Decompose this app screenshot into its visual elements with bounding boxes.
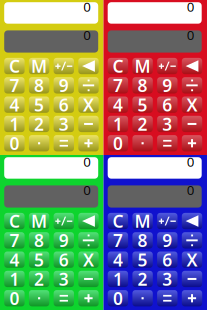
staticText: 6 [162,248,172,271]
button[interactable]: 2 [29,271,49,287]
button[interactable]: 5 [29,251,49,268]
staticText: X [83,93,94,116]
button[interactable]: 4 [4,96,25,113]
button[interactable]: 9 [54,77,74,93]
button[interactable]: 2 [132,271,153,287]
button[interactable]: 8 [29,77,49,93]
button[interactable]: Divide [78,232,99,248]
staticText: C [9,54,20,77]
button[interactable]: 3 [157,116,177,132]
button[interactable]: Minus [182,271,202,287]
button[interactable]: Plus minus [157,58,177,74]
button[interactable]: Backspace [182,58,202,74]
button[interactable]: 2 [132,116,153,132]
button[interactable]: 8 [132,232,153,248]
button[interactable]: 4 [4,251,25,268]
button[interactable]: 1 [4,271,25,287]
button[interactable]: 0 [4,135,25,151]
button[interactable]: Plus [78,135,99,151]
button[interactable]: 3 [157,271,177,287]
staticText: X [186,93,197,116]
staticText: 0 [9,287,19,310]
staticText: 8 [138,229,148,252]
button[interactable]: 3 [54,271,74,287]
button[interactable]: M [132,213,153,229]
button[interactable]: Backspace [182,213,202,229]
button[interactable]: 5 [29,96,49,113]
staticText: C [112,209,123,232]
button[interactable]: Plus minus [54,58,74,74]
button[interactable]: 0 [108,135,128,151]
staticText: 9 [59,229,69,252]
button[interactable]: 6 [54,251,74,268]
staticText: 0 [187,153,195,170]
staticText: 2 [138,112,148,135]
button[interactable]: C [4,213,25,229]
button[interactable]: M [132,58,153,74]
button[interactable]: Plus minus [54,213,74,229]
button[interactable]: 0 [4,290,25,306]
button[interactable]: 7 [4,77,25,93]
button[interactable]: X [182,251,202,268]
button[interactable]: Backspace [78,58,99,74]
button[interactable]: 9 [54,232,74,248]
button[interactable]: Equals [157,290,177,306]
button[interactable]: X [78,251,99,268]
button[interactable]: 6 [157,251,177,268]
button[interactable]: Divide [182,232,202,248]
button[interactable]: 0 [108,290,128,306]
button[interactable]: C [108,58,128,74]
button[interactable]: Divide [182,77,202,93]
button[interactable]: Divide [78,77,99,93]
button[interactable]: X [182,96,202,113]
button[interactable]: Plus [78,290,99,306]
button[interactable]: Minus [78,271,99,287]
button[interactable]: 6 [157,96,177,113]
button[interactable]: Plus [182,135,202,151]
button[interactable]: 9 [157,77,177,93]
staticText: 0 [9,132,19,155]
button[interactable]: 2 [29,116,49,132]
staticText: 2 [138,267,148,290]
button[interactable]: M [29,213,49,229]
staticText: 4 [9,93,19,116]
button[interactable]: 7 [108,232,128,248]
button[interactable]: Decimal point [29,135,49,151]
button[interactable]: 8 [132,77,153,93]
button[interactable]: 5 [132,96,153,113]
staticText: 9 [162,229,172,252]
button[interactable]: 4 [108,251,128,268]
button[interactable]: Equals [54,290,74,306]
button[interactable]: Plus minus [157,213,177,229]
button[interactable]: 9 [157,232,177,248]
staticText: 0 [113,287,123,310]
button[interactable]: 3 [54,116,74,132]
staticText: 1 [9,267,19,290]
button[interactable]: 6 [54,96,74,113]
button[interactable]: 5 [132,251,153,268]
button[interactable]: 8 [29,232,49,248]
staticText: 0 [83,181,91,199]
button[interactable]: 1 [4,116,25,132]
button[interactable]: Minus [182,116,202,132]
staticText: 2 [34,267,44,290]
staticText: 4 [113,93,123,116]
button[interactable]: Decimal point [132,135,153,151]
button[interactable]: Equals [54,135,74,151]
button[interactable]: 7 [4,232,25,248]
button[interactable]: Decimal point [29,290,49,306]
button[interactable]: Equals [157,135,177,151]
button[interactable]: Minus [78,116,99,132]
button[interactable]: C [108,213,128,229]
button[interactable]: Backspace [78,213,99,229]
button[interactable]: Decimal point [132,290,153,306]
button[interactable]: 4 [108,96,128,113]
button[interactable]: Plus [182,290,202,306]
button[interactable]: 1 [108,271,128,287]
button[interactable]: M [29,58,49,74]
button[interactable]: 7 [108,77,128,93]
button[interactable]: 1 [108,116,128,132]
button[interactable]: X [78,96,99,113]
staticText: M [135,54,151,77]
button[interactable]: C [4,58,25,74]
